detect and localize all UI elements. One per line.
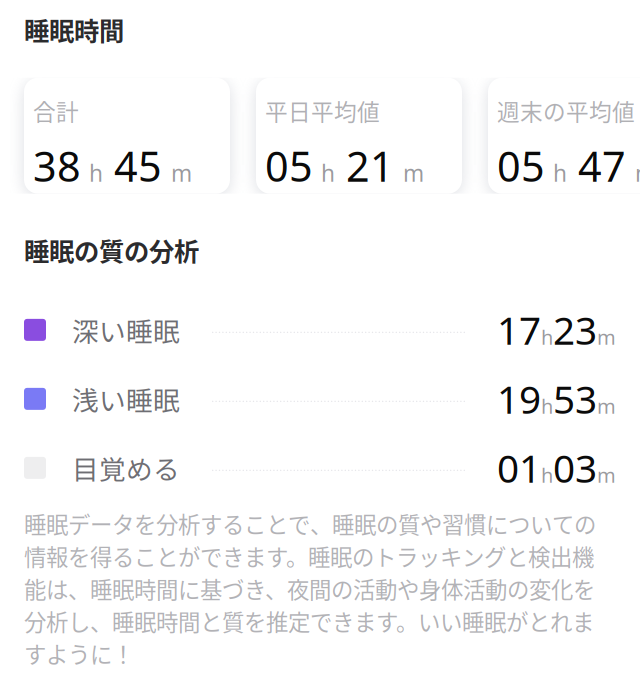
staticText: 睡眠データを分析することで、睡眠の質や習慣についての情報を得ることができます。睡… [24,507,596,670]
staticText: m [597,392,616,420]
staticText: h [321,157,335,188]
staticText: h [541,392,553,420]
staticText: 17 [497,303,541,356]
staticText: m [597,461,616,489]
staticText: 05 [265,137,313,194]
staticText: 週末の平均値 [497,94,635,127]
staticText: 03 [553,441,597,494]
staticText: h [541,461,553,489]
staticText: h [553,157,567,188]
button[interactable]: 合計 [24,78,230,194]
staticText: 47 [578,137,626,194]
staticText: 睡眠の質の分析 [24,232,199,268]
staticText: 睡眠時間 [24,11,124,48]
staticText: 53 [553,372,597,425]
button[interactable]: 深い睡眠 [24,295,616,364]
staticText: 19 [497,372,541,425]
button[interactable]: 平日平均値 [256,78,462,194]
staticText: 合計 [33,94,79,127]
staticText: m [635,157,640,188]
staticText: m [403,157,424,188]
staticText: 深い睡眠 [72,311,180,349]
staticText: m [597,323,616,351]
staticText: 平日平均値 [265,94,380,127]
staticText: m [171,157,192,188]
staticText: 05 [497,137,545,194]
staticText: 23 [553,303,597,356]
staticText: 浅い睡眠 [72,380,180,418]
staticText: 38 [33,137,81,194]
button[interactable]: 目覚める [24,433,616,502]
button[interactable]: 浅い睡眠 [24,364,616,433]
staticText: h [89,157,103,188]
staticText: h [541,323,553,351]
button[interactable]: 週末の平均値 [488,78,640,194]
staticText: 21 [346,137,394,194]
staticText: 01 [497,441,541,494]
staticText: 目覚める [72,449,180,487]
staticText: 45 [114,137,162,194]
